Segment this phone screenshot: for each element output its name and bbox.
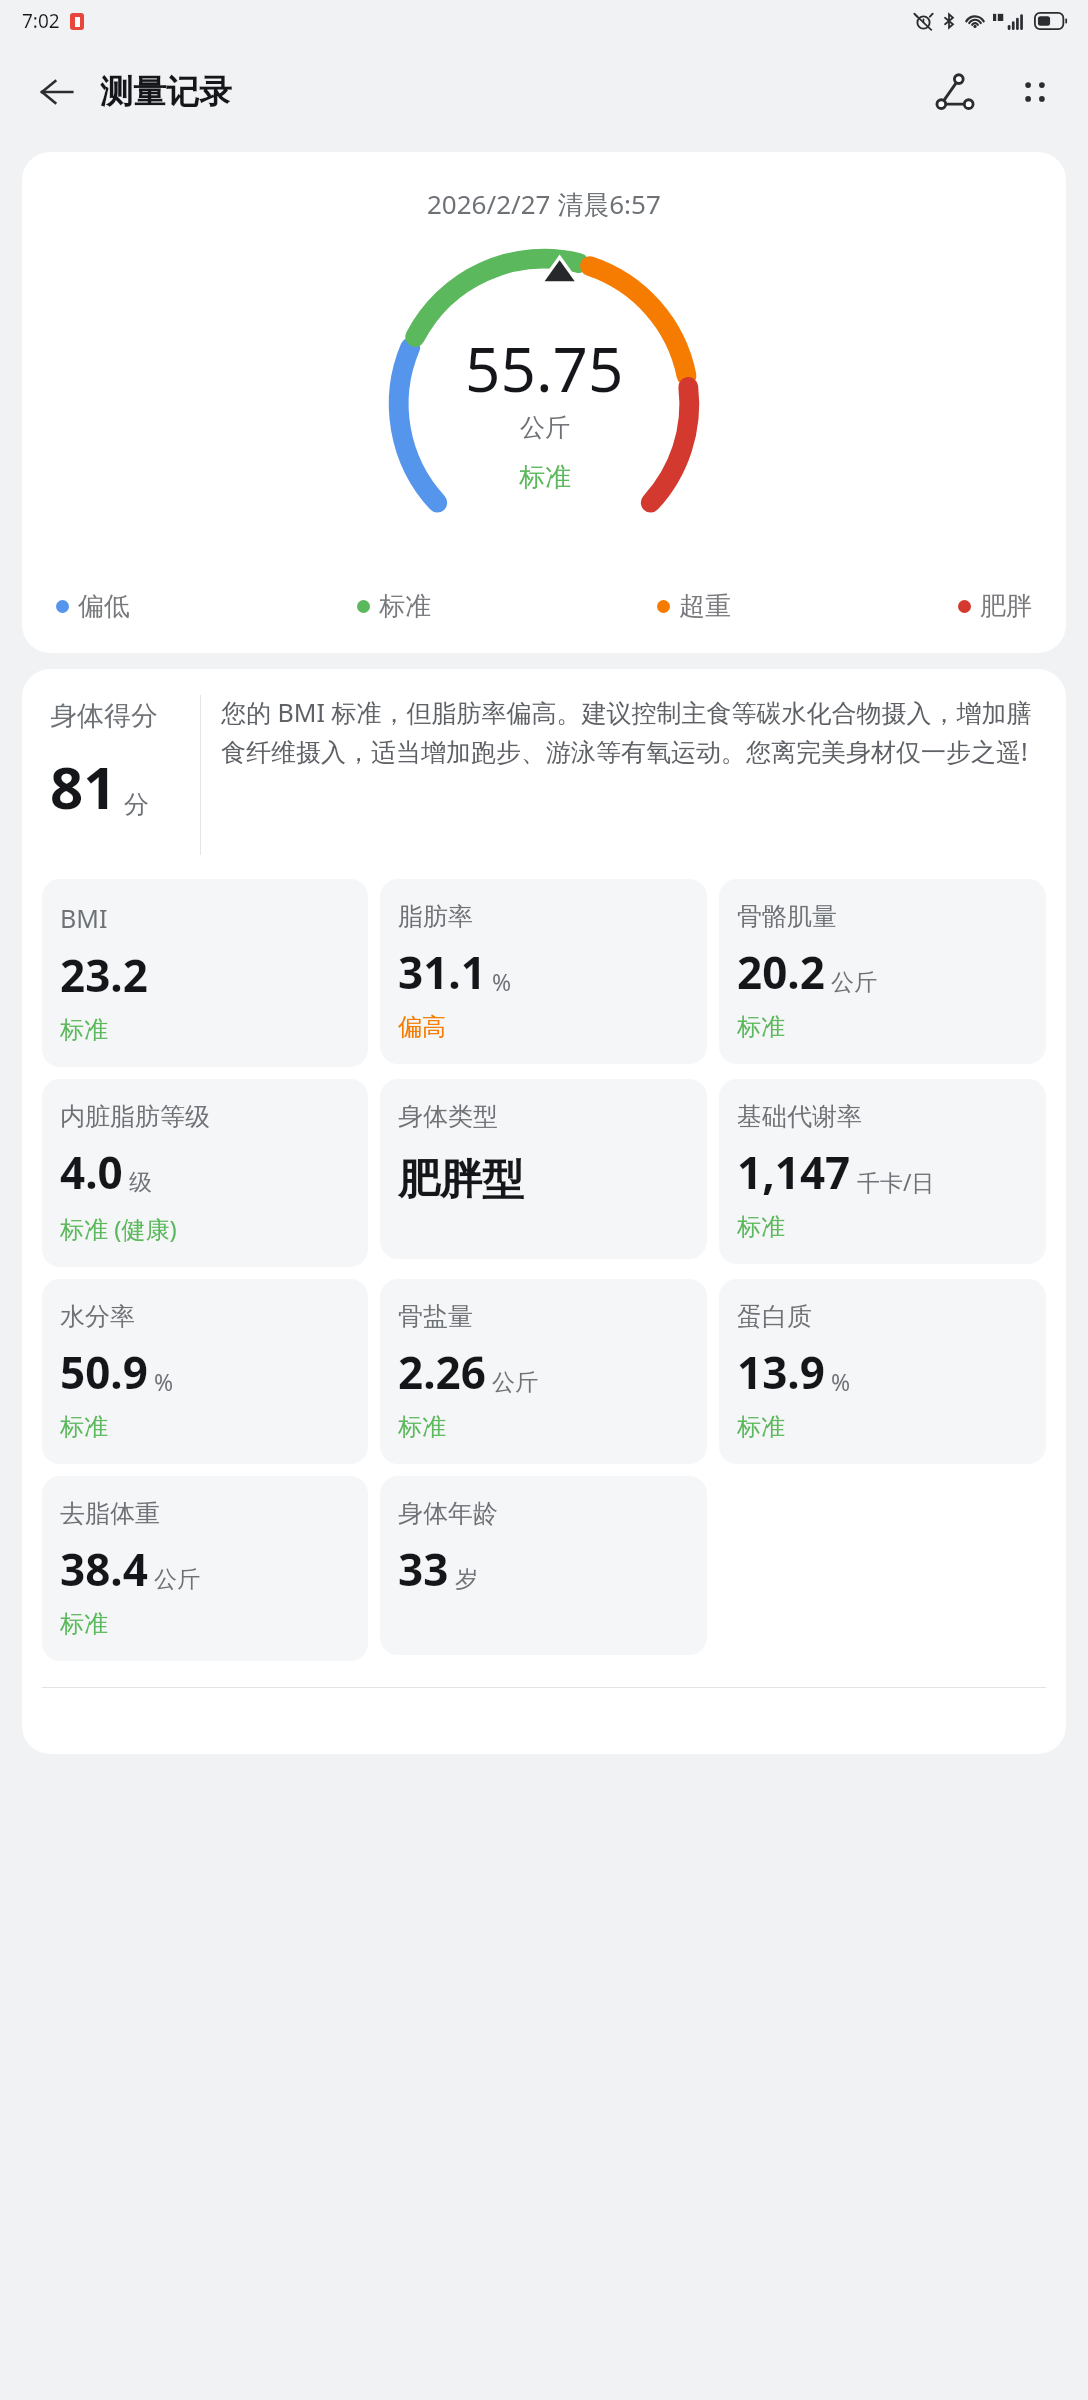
staticText: 岁	[455, 1565, 478, 1594]
staticText: 55.75	[465, 326, 624, 410]
staticText: 标准	[379, 590, 431, 623]
staticText: 81	[50, 747, 117, 826]
staticText: 公斤	[492, 1368, 538, 1397]
staticText: 公斤	[831, 968, 877, 997]
staticText: 31.1	[398, 942, 486, 1002]
staticText: 38.4	[60, 1539, 148, 1599]
staticText: 肥胖	[980, 590, 1032, 623]
staticText: 标准	[60, 1609, 108, 1639]
button[interactable]: 脂肪率	[380, 879, 707, 1064]
staticText: 公斤	[520, 412, 570, 443]
button[interactable]: 水分率	[42, 1279, 368, 1464]
button[interactable]: BMI	[42, 879, 368, 1067]
staticText: 测量记录	[100, 71, 232, 113]
staticText: 1,147	[737, 1142, 851, 1202]
button[interactable]: Share	[924, 61, 986, 123]
staticText: 公斤	[154, 1565, 200, 1594]
staticText: 标准 (健康)	[60, 1212, 177, 1245]
staticText: 23.2	[60, 945, 148, 1005]
staticText: 千卡/日	[857, 1166, 935, 1197]
staticText: 您的 BMI 标准，但脂肪率偏高。建议控制主食等碳水化合物摄入，增加膳食纤维摄入…	[221, 695, 1042, 768]
staticText: 标准	[398, 1412, 446, 1442]
staticText: 蛋白质	[737, 1301, 812, 1332]
button[interactable]: More options	[1004, 61, 1066, 123]
staticText: BMI	[60, 901, 108, 935]
staticText: 标准	[60, 1412, 108, 1442]
staticText: 偏低	[78, 590, 130, 623]
staticText: 身体得分	[50, 699, 158, 733]
button[interactable]: 骨盐量	[380, 1279, 707, 1464]
staticText: 脂肪率	[398, 901, 473, 932]
button[interactable]: 内脏脂肪等级	[42, 1079, 368, 1267]
button[interactable]: 骨骼肌量	[719, 879, 1046, 1064]
staticText: 标准	[737, 1412, 785, 1442]
button[interactable]: 身体类型	[380, 1079, 707, 1259]
button[interactable]: Back	[28, 63, 86, 121]
staticText: 标准	[737, 1212, 785, 1242]
staticText: 标准	[60, 1015, 108, 1045]
staticText: 基础代谢率	[737, 1101, 862, 1132]
staticText: 2.26	[398, 1342, 486, 1402]
staticText: 7:02	[22, 8, 60, 34]
button[interactable]: 蛋白质	[719, 1279, 1046, 1464]
button[interactable]: 去脂体重	[42, 1476, 368, 1661]
staticText: 偏高	[398, 1012, 446, 1042]
staticText: 33	[398, 1539, 449, 1599]
staticText: 13.9	[737, 1342, 825, 1402]
staticText: 2026/2/27 清晨6:57	[427, 186, 661, 222]
staticText: 身体类型	[398, 1101, 498, 1132]
staticText: 内脏脂肪等级	[60, 1101, 210, 1132]
button[interactable]: 2026/2/27 清晨6:57	[22, 152, 1066, 653]
staticText: 超重	[679, 590, 731, 623]
staticText: 标准	[737, 1012, 785, 1042]
staticText: 水分率	[60, 1301, 135, 1332]
staticText: %	[831, 1366, 851, 1397]
staticText: 分	[124, 789, 149, 820]
staticText: 骨盐量	[398, 1301, 473, 1332]
staticText: 去脂体重	[60, 1498, 160, 1529]
staticText: 20.2	[737, 942, 825, 1002]
staticText: %	[492, 966, 512, 997]
staticText: 骨骼肌量	[737, 901, 837, 932]
staticText: 身体年龄	[398, 1498, 498, 1529]
staticText: %	[154, 1366, 174, 1397]
button[interactable]: 身体年龄	[380, 1476, 707, 1655]
button[interactable]: 基础代谢率	[719, 1079, 1046, 1264]
staticText: 4.0	[60, 1142, 123, 1202]
staticText: 肥胖型	[398, 1154, 524, 1207]
staticText: 级	[129, 1168, 152, 1197]
staticText: 50.9	[60, 1342, 148, 1402]
staticText: 标准	[519, 461, 571, 494]
